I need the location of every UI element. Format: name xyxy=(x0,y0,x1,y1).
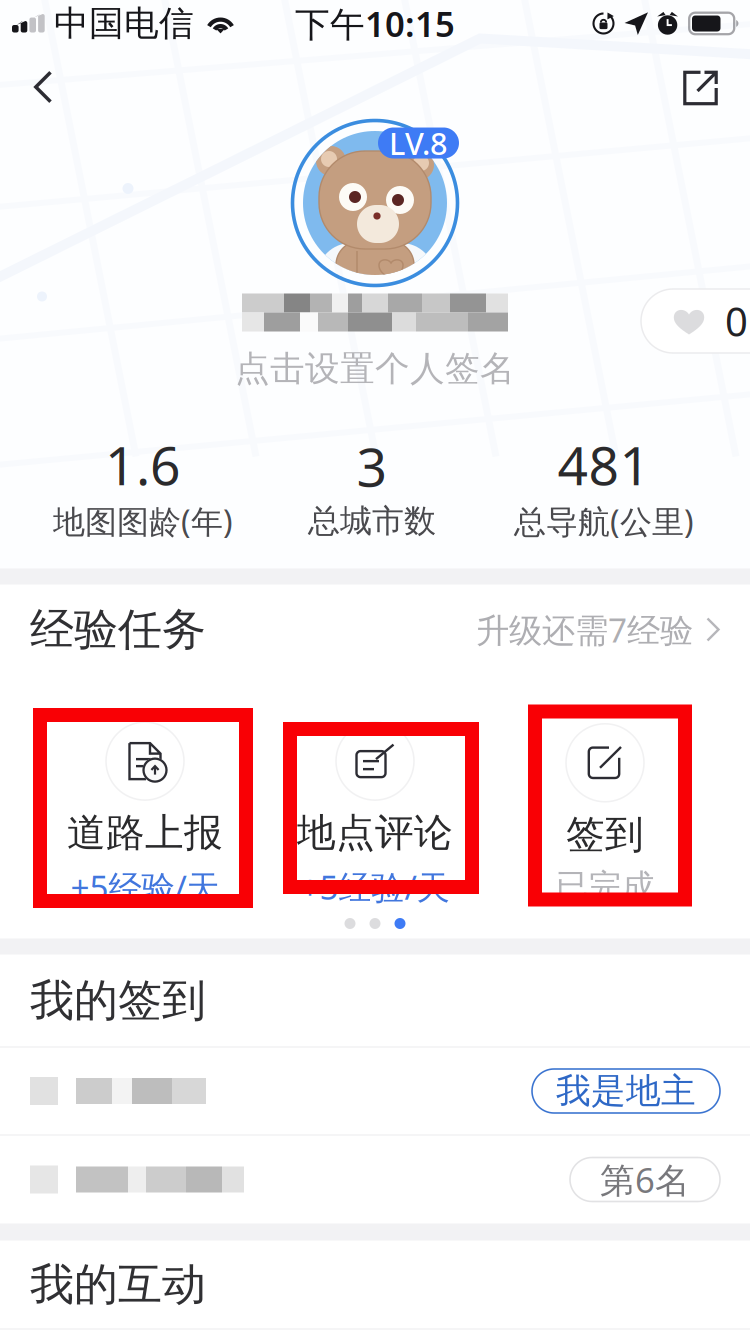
staticText: 道路上报 xyxy=(67,809,223,857)
button[interactable]: 升级还需7经验 xyxy=(476,589,720,670)
button[interactable]: 我是地主 xyxy=(0,1047,750,1134)
staticText: 签到 xyxy=(566,811,644,858)
button[interactable]: 签到 xyxy=(490,674,720,910)
button[interactable]: 第6名 xyxy=(0,1135,750,1223)
staticText: 下午10:15 xyxy=(295,0,455,46)
staticText: 升级还需7经验 xyxy=(476,607,693,652)
staticText: 481 xyxy=(557,429,650,500)
staticText: 0 xyxy=(725,294,748,347)
staticText: 地图图龄(年) xyxy=(53,500,233,542)
staticText: 中国电信 xyxy=(54,2,194,45)
button[interactable]: Back xyxy=(0,38,81,123)
staticText: 3 xyxy=(356,431,387,501)
staticText: 已完成 xyxy=(555,866,654,907)
staticText: +5经验/天 xyxy=(70,865,219,909)
staticText: 总城市数 xyxy=(308,501,436,541)
staticText: 点击设置个人签名 xyxy=(235,347,515,390)
button[interactable]: Share xyxy=(655,38,750,123)
staticText: +5经验/天 xyxy=(300,865,449,909)
staticText: 经验任务 xyxy=(30,602,206,656)
staticText: 地点评论 xyxy=(297,809,453,857)
staticText: 我的互动 xyxy=(30,1257,206,1311)
staticText: LV.8 xyxy=(389,123,448,163)
button[interactable]: Likes xyxy=(641,289,750,353)
staticText: 第6名 xyxy=(600,1156,690,1202)
staticText: 我的签到 xyxy=(30,973,206,1027)
staticText: 1.6 xyxy=(105,429,181,500)
button[interactable]: 地点评论 xyxy=(260,674,490,910)
staticText: 总导航(公里) xyxy=(514,500,694,542)
staticText: 我是地主 xyxy=(556,1070,696,1112)
button[interactable]: 道路上报 xyxy=(30,674,260,910)
